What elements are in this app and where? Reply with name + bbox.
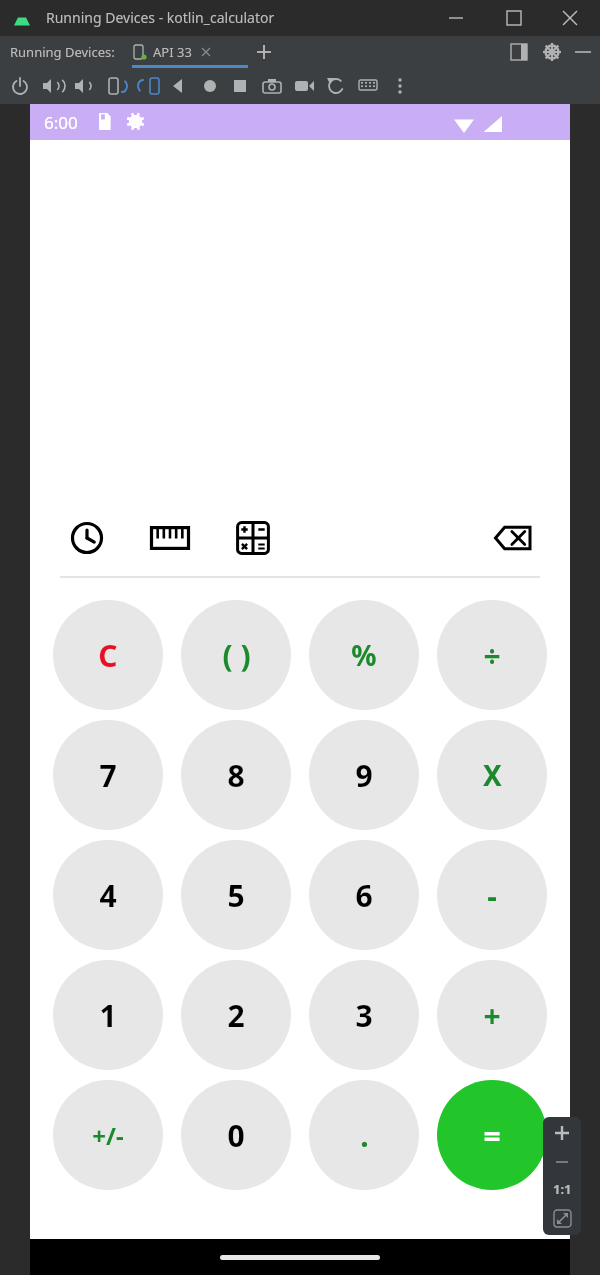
staticText: 0 [227, 1115, 245, 1156]
button[interactable]: 1 [53, 960, 163, 1070]
staticText: - [487, 875, 497, 916]
button[interactable]: Back [166, 74, 190, 98]
button[interactable]: ( ) [181, 600, 291, 710]
staticText: . [360, 1115, 369, 1156]
button[interactable]: 1:1 [543, 1175, 581, 1203]
button[interactable]: Maximize [492, 6, 536, 30]
button[interactable]: X [437, 720, 547, 830]
button[interactable]: + [437, 960, 547, 1070]
staticText: 5 [227, 875, 245, 916]
staticText: C [98, 635, 118, 676]
button[interactable]: 6 [309, 840, 419, 950]
button[interactable]: More [388, 74, 412, 98]
staticText: Running Devices - kotlin_calculator [46, 8, 275, 27]
button[interactable]: Volume up [40, 74, 64, 98]
button[interactable]: Rotate right [104, 74, 128, 98]
staticText: Running Devices: [10, 43, 115, 61]
button[interactable]: Add device [252, 40, 276, 64]
button[interactable]: 8 [181, 720, 291, 830]
staticText: 1 [99, 995, 117, 1036]
staticText: = [483, 1115, 501, 1156]
button[interactable]: Rotate left [136, 74, 160, 98]
button[interactable]: Record screen [292, 74, 316, 98]
button[interactable]: Home [198, 74, 222, 98]
button[interactable]: +/- [53, 1080, 163, 1190]
button[interactable]: Overview [228, 74, 252, 98]
staticText: 7 [99, 755, 117, 796]
staticText: 4 [99, 875, 117, 916]
staticText: % [351, 636, 377, 674]
staticText: 6 [355, 875, 373, 916]
button[interactable]: Restore [324, 74, 348, 98]
staticText: ÷ [483, 635, 501, 676]
staticText: ( ) [222, 635, 251, 676]
button[interactable]: Volume down [72, 74, 96, 98]
button[interactable]: Power [8, 74, 32, 98]
button[interactable]: Zoom in [543, 1117, 581, 1149]
staticText: 1:1 [553, 1180, 572, 1198]
staticText: API 33 [153, 43, 192, 61]
button[interactable]: Unit converter [143, 511, 197, 565]
button[interactable]: Zoom out [543, 1149, 581, 1175]
button[interactable]: C [53, 600, 163, 710]
button[interactable]: Keyboard [356, 74, 380, 98]
button[interactable]: ÷ [437, 600, 547, 710]
button[interactable]: Fit to screen [543, 1203, 581, 1233]
staticText: 6:00 [44, 111, 78, 134]
button[interactable]: History [60, 511, 114, 565]
button[interactable]: 9 [309, 720, 419, 830]
staticText: 2 [227, 995, 245, 1036]
staticText: +/- [92, 1119, 124, 1152]
button[interactable]: Layout [508, 41, 530, 63]
button[interactable]: . [309, 1080, 419, 1190]
button[interactable]: Screenshot [260, 74, 284, 98]
button[interactable]: 7 [53, 720, 163, 830]
staticText: 3 [355, 995, 373, 1036]
button[interactable]: - [437, 840, 547, 950]
button[interactable]: Hide [572, 41, 594, 63]
button[interactable]: = [437, 1080, 547, 1190]
staticText: 9 [355, 755, 373, 796]
button[interactable]: 5 [181, 840, 291, 950]
button[interactable]: Close tab [200, 46, 212, 58]
button[interactable]: Minimize [434, 6, 478, 30]
button[interactable]: Backspace [486, 511, 540, 565]
button[interactable]: % [309, 600, 419, 710]
staticText: 8 [227, 755, 245, 796]
button[interactable]: 2 [181, 960, 291, 1070]
button[interactable]: 4 [53, 840, 163, 950]
button[interactable]: Scientific [226, 511, 280, 565]
button[interactable]: 3 [309, 960, 419, 1070]
button[interactable]: API 33 [132, 36, 212, 68]
staticText: + [483, 995, 501, 1036]
button[interactable]: Close [548, 6, 592, 30]
button[interactable]: 0 [181, 1080, 291, 1190]
button[interactable]: Settings [541, 41, 563, 63]
staticText: X [483, 756, 502, 794]
